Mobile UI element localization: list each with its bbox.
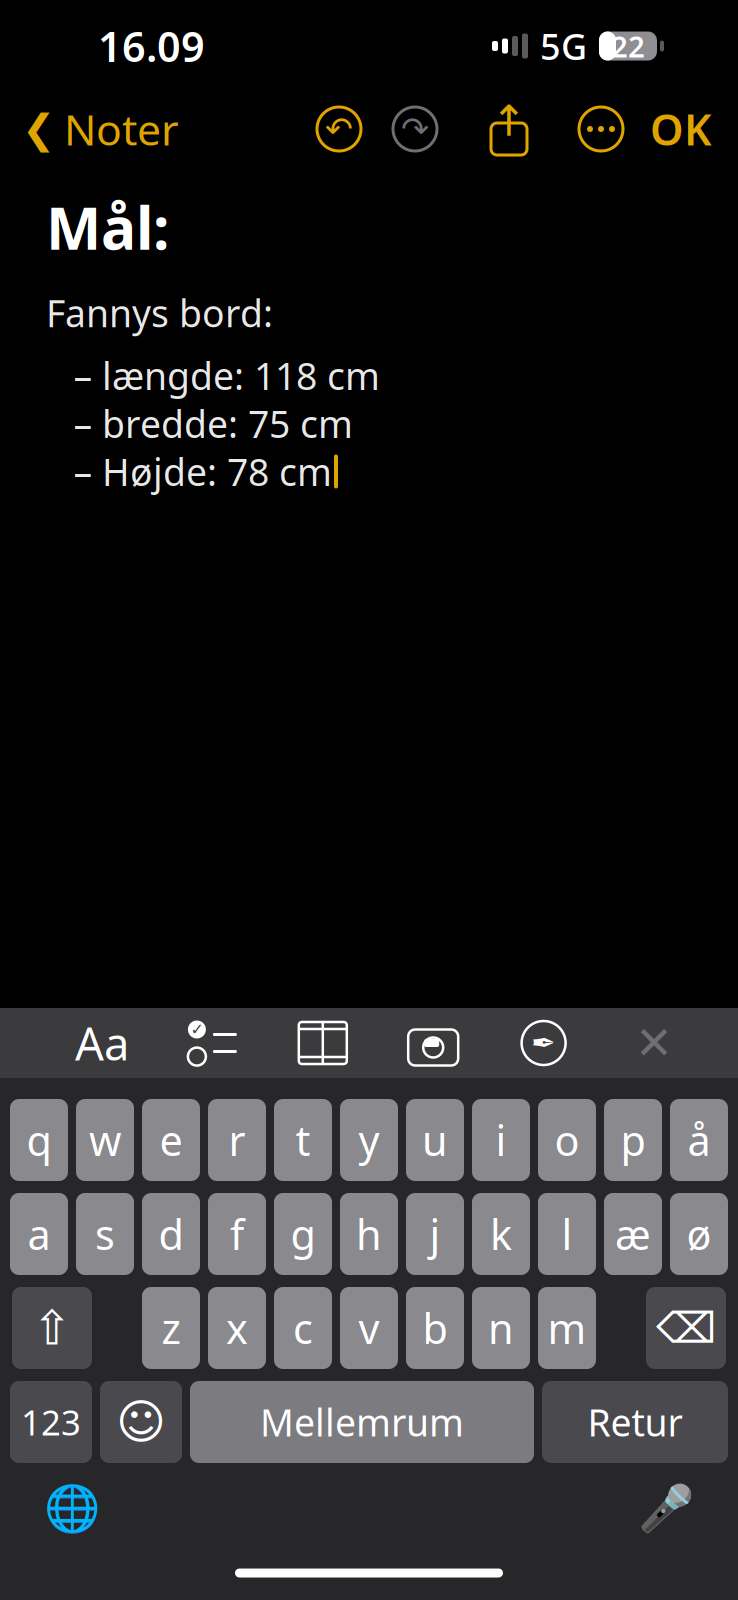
staticText: d [158, 1207, 183, 1261]
staticText: ✕ [635, 1017, 673, 1069]
button[interactable]: g [274, 1193, 332, 1275]
staticText: ↑ [491, 97, 527, 145]
staticText: – [73, 447, 92, 496]
button[interactable]: ❮ [0, 98, 179, 160]
button[interactable]: Skift [12, 1287, 92, 1369]
button[interactable]: z [142, 1287, 200, 1369]
button[interactable]: x [208, 1287, 266, 1369]
button[interactable]: OK [650, 98, 738, 160]
staticText: Retur [587, 1397, 682, 1447]
staticText: Fannys bord: [46, 288, 273, 337]
button[interactable]: Emoji [100, 1381, 182, 1463]
button[interactable]: Retur [542, 1381, 728, 1463]
staticText: Mellemrum [260, 1397, 464, 1447]
staticText: ↷ [401, 110, 429, 148]
button[interactable]: 123 [10, 1381, 92, 1463]
button[interactable]: i [472, 1099, 530, 1181]
button[interactable]: w [76, 1099, 134, 1181]
button[interactable]: Skift tastatur [36, 1473, 108, 1545]
button[interactable]: f [208, 1193, 266, 1275]
button[interactable]: r [208, 1099, 266, 1181]
staticText: – [73, 351, 92, 400]
button[interactable]: Formatering [64, 1012, 140, 1074]
staticText: ⇧ [32, 1301, 72, 1355]
staticText: OK [650, 101, 712, 157]
button[interactable]: Kamera [395, 1012, 471, 1074]
button[interactable]: Del [484, 101, 534, 157]
button[interactable]: v [340, 1287, 398, 1369]
button[interactable]: a [10, 1193, 68, 1275]
staticText: t [295, 1113, 310, 1167]
button[interactable]: k [472, 1193, 530, 1275]
staticText: g [290, 1207, 315, 1261]
staticText: a [27, 1207, 50, 1261]
button[interactable]: o [538, 1099, 596, 1181]
button[interactable]: Mere [576, 104, 626, 154]
staticText: 5G [540, 22, 587, 70]
button[interactable]: Tabel [285, 1012, 361, 1074]
staticText: b [422, 1301, 447, 1355]
button[interactable]: ø [670, 1193, 728, 1275]
button[interactable]: q [10, 1099, 68, 1181]
button[interactable]: æ [604, 1193, 662, 1275]
staticText: c [293, 1301, 313, 1355]
staticText: længde: 118 cm [102, 351, 380, 400]
button[interactable]: c [274, 1287, 332, 1369]
button[interactable]: Luk [616, 1012, 692, 1074]
staticText: bredde: 75 cm [102, 399, 353, 448]
button[interactable]: b [406, 1287, 464, 1369]
staticText: v [358, 1301, 379, 1355]
staticText: ↶ [325, 110, 353, 148]
button[interactable]: Tjekliste [174, 1012, 250, 1074]
staticText: e [159, 1113, 182, 1167]
staticText: n [488, 1301, 514, 1355]
staticText: f [230, 1207, 244, 1261]
button[interactable]: m [538, 1287, 596, 1369]
button[interactable]: t [274, 1099, 332, 1181]
staticText: Aa [75, 1013, 129, 1073]
staticText: ⌫ [656, 1304, 716, 1352]
button[interactable]: h [340, 1193, 398, 1275]
staticText: Noter [64, 101, 179, 157]
button[interactable]: u [406, 1099, 464, 1181]
staticText: å [687, 1113, 710, 1167]
staticText: o [554, 1113, 579, 1167]
staticText: s [95, 1207, 115, 1261]
button[interactable]: p [604, 1099, 662, 1181]
staticText: 16.09 [98, 19, 205, 73]
button[interactable]: s [76, 1193, 134, 1275]
staticText: ✓ [190, 1020, 203, 1039]
button[interactable]: d [142, 1193, 200, 1275]
staticText: i [495, 1113, 506, 1167]
staticText: ✒ [531, 1026, 556, 1060]
button[interactable]: Mellemrum [190, 1381, 534, 1463]
staticText: 22 [611, 26, 645, 65]
button[interactable]: n [472, 1287, 530, 1369]
staticText: x [226, 1301, 248, 1355]
staticText: y [358, 1113, 379, 1167]
staticText: Mål: [46, 188, 169, 266]
staticText: ❮ [22, 106, 56, 152]
button[interactable]: Markering [506, 1012, 582, 1074]
staticText: l [561, 1207, 572, 1261]
button[interactable]: j [406, 1193, 464, 1275]
staticText: w [89, 1113, 121, 1167]
staticText: ø [686, 1207, 711, 1261]
staticText: r [228, 1113, 245, 1167]
staticText: æ [615, 1207, 651, 1261]
staticText: m [547, 1301, 586, 1355]
button[interactable]: Gentag [390, 104, 440, 154]
staticText: z [161, 1301, 180, 1355]
button[interactable]: l [538, 1193, 596, 1275]
button[interactable]: Fortryd [314, 104, 364, 154]
button[interactable]: å [670, 1099, 728, 1181]
button[interactable]: Diktat [630, 1473, 702, 1545]
button[interactable]: e [142, 1099, 200, 1181]
staticText: h [356, 1207, 382, 1261]
button[interactable]: y [340, 1099, 398, 1181]
button[interactable]: Slet [646, 1287, 726, 1369]
staticText: – [73, 399, 92, 448]
staticText: q [26, 1113, 51, 1167]
staticText: k [490, 1207, 512, 1261]
staticText: 🎤 [638, 1483, 694, 1535]
